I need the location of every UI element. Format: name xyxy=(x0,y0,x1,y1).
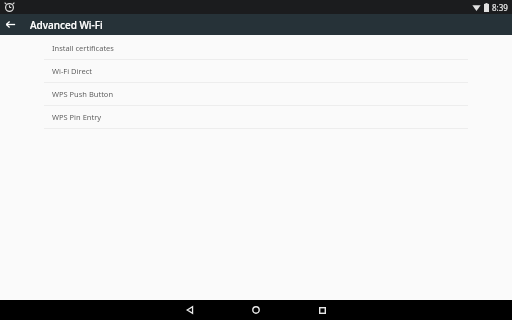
button[interactable]: Back xyxy=(180,300,200,320)
button[interactable]: Install certificates xyxy=(0,37,512,59)
staticText: WPS Pin Entry xyxy=(52,112,102,122)
button[interactable]: Wi-Fi Direct xyxy=(0,60,512,82)
button[interactable]: Back xyxy=(0,14,21,35)
staticText: Install certificates xyxy=(52,43,114,53)
staticText: 8:39 xyxy=(492,2,508,13)
button[interactable]: WPS Push Button xyxy=(0,83,512,105)
button[interactable]: WPS Pin Entry xyxy=(0,106,512,128)
staticText: Wi-Fi Direct xyxy=(52,66,92,76)
button[interactable]: Home xyxy=(246,300,266,320)
staticText: WPS Push Button xyxy=(52,89,114,99)
button[interactable]: Recent apps xyxy=(312,300,332,320)
staticText: Advanced Wi-Fi xyxy=(30,18,103,32)
